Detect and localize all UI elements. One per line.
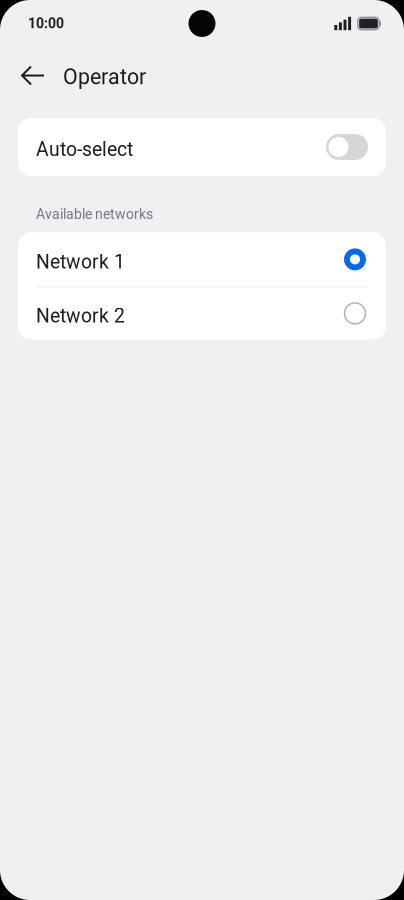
staticText: Operator (63, 64, 146, 89)
staticText: Available networks (36, 206, 153, 222)
button[interactable]: Back (10, 52, 56, 98)
staticText: Network 2 (36, 305, 125, 327)
staticText: Network 1 (36, 251, 125, 273)
button[interactable]: Network 1 (18, 232, 386, 286)
staticText: 10:00 (28, 15, 64, 32)
button[interactable]: Network 2 (18, 287, 386, 339)
button[interactable]: Auto-select (18, 118, 386, 176)
staticText: Auto-select (36, 138, 133, 161)
